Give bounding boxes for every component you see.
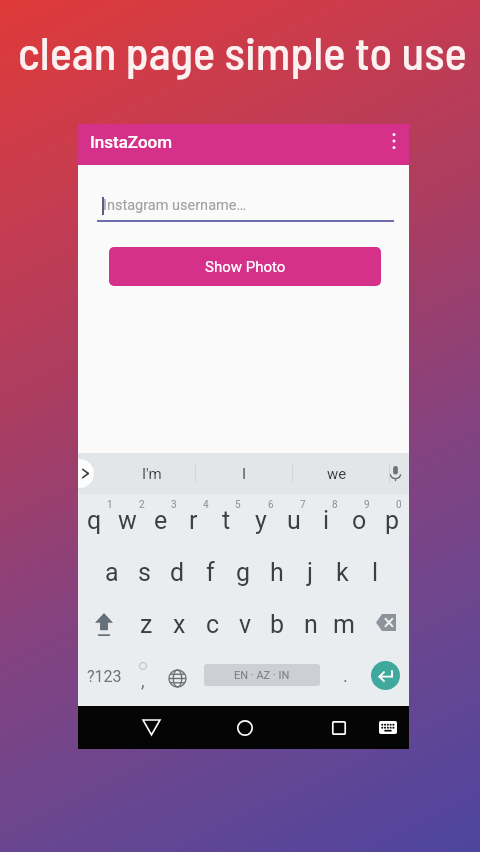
button[interactable]: Enter [366, 647, 404, 703]
button[interactable]: m [327, 598, 360, 650]
button[interactable]: 6 [244, 490, 277, 542]
staticText: r [189, 506, 198, 535]
staticText: 0 [396, 499, 402, 511]
staticText: e [154, 506, 168, 535]
staticText: clean page simple to use [18, 23, 467, 79]
button[interactable]: EN · AZ · IN [204, 664, 320, 686]
button[interactable]: z [130, 598, 163, 650]
button[interactable]: Voice input [381, 453, 409, 494]
button[interactable]: Show Photo [109, 247, 381, 286]
staticText: u [287, 506, 301, 535]
staticText: 9 [364, 499, 370, 511]
staticText: I'm [142, 465, 162, 483]
staticText: w [118, 506, 137, 535]
button[interactable]: 3 [144, 490, 177, 542]
button[interactable]: we [295, 453, 379, 494]
staticText: 4 [203, 499, 209, 511]
button[interactable]: Shift [78, 598, 130, 650]
button[interactable]: f [194, 546, 227, 598]
staticText: m [333, 610, 355, 639]
button[interactable]: a [95, 546, 128, 598]
button[interactable]: 4 [177, 490, 210, 542]
button[interactable]: n [294, 598, 327, 650]
button[interactable]: 7 [277, 490, 310, 542]
button[interactable]: Change language [155, 650, 199, 706]
button[interactable]: Back [129, 706, 173, 749]
button[interactable]: 0 [376, 490, 409, 542]
staticText: 7 [300, 499, 306, 511]
button[interactable]: s [128, 546, 161, 598]
staticText: Instagram username… [103, 197, 247, 214]
button[interactable]: More options [380, 127, 408, 155]
button[interactable]: Recent apps [317, 706, 361, 749]
button[interactable]: 2 [111, 490, 144, 542]
button[interactable]: d [161, 546, 194, 598]
staticText: 8 [332, 499, 338, 511]
staticText: o [352, 506, 367, 535]
staticText: x [173, 610, 186, 639]
staticText: EN · AZ · IN [234, 669, 290, 682]
button[interactable]: Expand suggestions [78, 459, 94, 488]
staticText: InstaZoom [90, 132, 173, 152]
button[interactable]: I [202, 453, 286, 494]
staticText: a [105, 558, 119, 587]
button[interactable]: v [229, 598, 262, 650]
button[interactable]: x [163, 598, 196, 650]
button[interactable]: Hide keyboard [370, 706, 406, 749]
staticText: . [343, 665, 348, 686]
button[interactable]: 1 [78, 490, 111, 542]
button[interactable]: , [131, 650, 154, 706]
staticText: d [170, 558, 185, 587]
staticText: g [236, 558, 251, 587]
button[interactable]: ?123 [78, 650, 131, 706]
staticText: b [270, 610, 285, 639]
staticText: n [304, 610, 318, 639]
staticText: f [206, 558, 215, 587]
staticText: s [138, 558, 151, 587]
staticText: 2 [139, 499, 145, 511]
staticText: 1 [107, 499, 113, 511]
staticText: t [222, 506, 231, 535]
staticText: , [141, 670, 145, 691]
staticText: c [206, 610, 220, 639]
staticText: l [372, 558, 379, 587]
staticText: 6 [268, 499, 274, 511]
staticText: I [242, 465, 247, 483]
button[interactable]: g [227, 546, 260, 598]
button[interactable]: k [326, 546, 359, 598]
button[interactable]: Home [223, 706, 267, 749]
staticText: h [270, 558, 284, 587]
button[interactable]: b [261, 598, 294, 650]
staticText: k [336, 558, 349, 587]
staticText: z [140, 610, 153, 639]
button[interactable]: 5 [210, 490, 243, 542]
staticText: 5 [235, 499, 241, 511]
staticText: i [323, 506, 330, 535]
button[interactable]: 8 [310, 490, 343, 542]
button[interactable]: Instagram username… [97, 194, 394, 218]
button[interactable]: h [260, 546, 293, 598]
button[interactable]: c [196, 598, 229, 650]
button[interactable]: l [359, 546, 392, 598]
staticText: we [327, 465, 347, 483]
staticText: y [255, 506, 267, 535]
button[interactable]: Backspace [359, 598, 409, 650]
button[interactable]: j [293, 546, 326, 598]
button[interactable]: . [323, 650, 367, 706]
staticText: 3 [171, 499, 177, 511]
button[interactable]: 9 [343, 490, 376, 542]
button[interactable]: I'm [110, 453, 194, 494]
staticText: j [307, 558, 313, 587]
staticText: Show Photo [205, 258, 286, 276]
staticText: ?123 [87, 667, 122, 686]
staticText: p [385, 506, 400, 535]
staticText: v [239, 610, 252, 639]
staticText: q [87, 506, 102, 535]
